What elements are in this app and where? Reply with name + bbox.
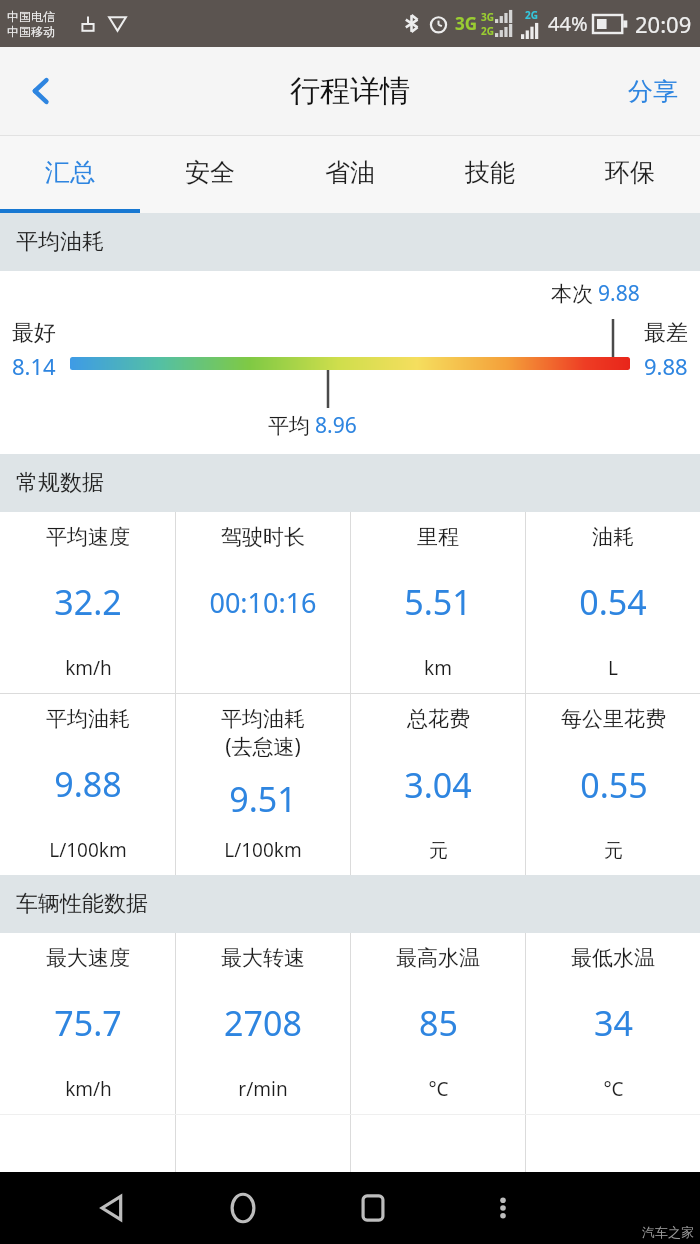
staticText: 常规数据 xyxy=(16,469,104,497)
staticText: L/100km xyxy=(49,837,127,863)
staticText: 最大转速 xyxy=(221,945,305,971)
staticText: 本次 xyxy=(551,281,593,307)
staticText: 9.88 xyxy=(54,761,122,807)
button[interactable]: 最大速度 xyxy=(0,933,175,1114)
button[interactable]: 省油 xyxy=(280,136,420,209)
staticText: 安全 xyxy=(185,157,235,188)
staticText: 汇总 xyxy=(45,157,95,188)
staticText: 最高水温 xyxy=(396,945,480,971)
staticText: 油耗 xyxy=(592,524,634,550)
staticText: 9.88 xyxy=(644,351,688,381)
staticText: 里程 xyxy=(417,524,459,550)
staticText: 平均油耗 xyxy=(46,706,130,732)
staticText: (去怠速) xyxy=(225,732,301,761)
staticText: 5.51 xyxy=(404,579,472,625)
staticText: 平均油耗 xyxy=(221,706,305,732)
staticText: 75.7 xyxy=(54,1000,122,1046)
button[interactable]: 环保 xyxy=(560,136,700,209)
staticText: 最大速度 xyxy=(46,945,130,971)
staticText: 总花费 xyxy=(407,706,470,732)
button[interactable]: Back xyxy=(82,1177,144,1239)
staticText: 00:10:16 xyxy=(209,584,317,621)
staticText: 最好 xyxy=(12,319,56,347)
button[interactable]: More options xyxy=(472,1177,534,1239)
staticText: 每公里花费 xyxy=(561,706,666,732)
staticText: 平均油耗 xyxy=(16,228,104,256)
staticText: 技能 xyxy=(465,157,515,188)
staticText: 20:09 xyxy=(635,9,692,39)
button[interactable]: 平均油耗 xyxy=(176,694,350,875)
button[interactable]: Recents xyxy=(342,1177,404,1239)
staticText: 85 xyxy=(419,1000,458,1046)
staticText: 34 xyxy=(594,1000,633,1046)
button[interactable]: 最大转速 xyxy=(176,933,350,1114)
staticText: 最差 xyxy=(644,319,688,347)
staticText: °C xyxy=(428,1076,449,1102)
staticText: km/h xyxy=(65,655,112,681)
staticText: 44% xyxy=(548,10,588,37)
staticText: 汽车之家 xyxy=(642,1224,694,1240)
button[interactable]: 里程 xyxy=(351,512,525,693)
staticText: 2708 xyxy=(224,1000,302,1046)
staticText: 平均 xyxy=(268,413,310,439)
staticText: 3G xyxy=(481,10,494,24)
button[interactable]: 汇总 xyxy=(0,136,140,209)
staticText: 0.54 xyxy=(579,579,647,625)
button[interactable]: 平均速度 xyxy=(0,512,175,693)
button[interactable]: 最低水温 xyxy=(526,933,700,1114)
staticText: 9.51 xyxy=(229,776,297,822)
staticText: 3.04 xyxy=(404,762,472,808)
staticText: 中国移动 xyxy=(7,24,55,39)
staticText: km/h xyxy=(65,1076,112,1102)
staticText: L/100km xyxy=(224,837,302,863)
staticText: 驾驶时长 xyxy=(221,524,305,550)
button[interactable]: 每公里花费 xyxy=(526,694,700,875)
button[interactable]: 技能 xyxy=(420,136,560,209)
staticText: 2G xyxy=(481,24,494,38)
staticText: L xyxy=(608,655,618,681)
staticText: r/min xyxy=(238,1076,288,1102)
button[interactable]: Home xyxy=(212,1177,274,1239)
button[interactable]: 最高水温 xyxy=(351,933,525,1114)
staticText: 9.88 xyxy=(598,279,640,308)
staticText: 省油 xyxy=(325,157,375,188)
staticText: 元 xyxy=(604,839,623,863)
staticText: km xyxy=(424,655,452,681)
staticText: 8.14 xyxy=(12,351,56,381)
staticText: 行程详情 xyxy=(290,72,410,110)
staticText: 平均速度 xyxy=(46,524,130,550)
button[interactable]: 平均油耗 xyxy=(0,694,175,875)
button[interactable]: 油耗 xyxy=(526,512,700,693)
staticText: 中国电信 xyxy=(7,9,55,24)
staticText: °C xyxy=(603,1076,624,1102)
staticText: 车辆性能数据 xyxy=(16,890,148,918)
staticText: 最低水温 xyxy=(571,945,655,971)
staticText: 元 xyxy=(429,839,448,863)
staticText: 0.55 xyxy=(580,762,648,808)
staticText: 8.96 xyxy=(315,411,357,440)
staticText: 分享 xyxy=(628,76,678,107)
button[interactable]: 分享 xyxy=(606,47,700,135)
button[interactable]: Back xyxy=(0,47,82,135)
button[interactable]: 总花费 xyxy=(351,694,525,875)
button[interactable]: 驾驶时长 xyxy=(176,512,350,693)
staticText: 2G xyxy=(525,8,538,22)
button[interactable]: 安全 xyxy=(140,136,280,209)
staticText: 3G xyxy=(455,12,478,35)
staticText: 32.2 xyxy=(54,579,122,625)
staticText: 环保 xyxy=(605,157,655,188)
